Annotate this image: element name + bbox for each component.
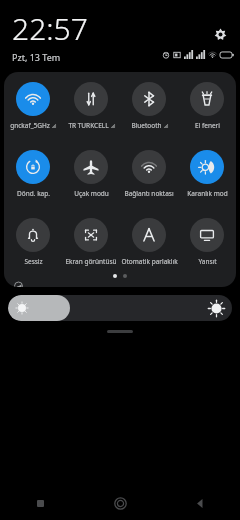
staticText: El feneri <box>195 121 220 130</box>
staticText: Bluetooth <box>131 121 162 130</box>
button[interactable]: Settings <box>208 22 232 46</box>
button[interactable]: Ekran görüntüsü <box>62 218 120 266</box>
button[interactable]: Bluetooth <box>120 82 178 130</box>
button[interactable]: Bugün: 665,9MB <box>4 285 236 287</box>
staticText: Karanlık mod <box>187 189 228 198</box>
staticText: Bağlantı noktası <box>124 189 174 198</box>
button[interactable]: Back <box>160 486 240 520</box>
staticText: gnckaf_5GHz <box>10 121 50 130</box>
button[interactable]: Uçak modu <box>62 150 120 198</box>
staticText: Otomatik parlaklık <box>121 257 178 266</box>
button[interactable]: TR TURKCELL <box>62 82 120 130</box>
button[interactable]: Dönd. kap. <box>4 150 62 198</box>
staticText: TR TURKCELL <box>68 121 109 130</box>
button[interactable]: gnckaf_5GHz <box>4 82 62 130</box>
button[interactable]: El feneri <box>178 82 236 130</box>
button[interactable]: Otomatik parlaklık <box>120 218 178 266</box>
staticText: Yansıt <box>198 257 217 266</box>
button[interactable]: Karanlık mod <box>178 150 236 198</box>
staticText: Uçak modu <box>74 189 109 198</box>
staticText: Dönd. kap. <box>17 189 50 198</box>
button[interactable]: Brightness <box>8 295 232 321</box>
staticText: 22:57 <box>12 8 88 49</box>
button[interactable]: Bağlantı noktası <box>120 150 178 198</box>
button[interactable]: Sessiz <box>4 218 62 266</box>
staticText: Ekran görüntüsü <box>65 257 117 266</box>
button[interactable]: Yansıt <box>178 218 236 266</box>
button[interactable]: Home <box>80 486 160 520</box>
staticText: Pzt, 13 Tem <box>12 51 61 63</box>
staticText: Sessiz <box>24 257 43 266</box>
button[interactable]: Recents <box>0 486 80 520</box>
